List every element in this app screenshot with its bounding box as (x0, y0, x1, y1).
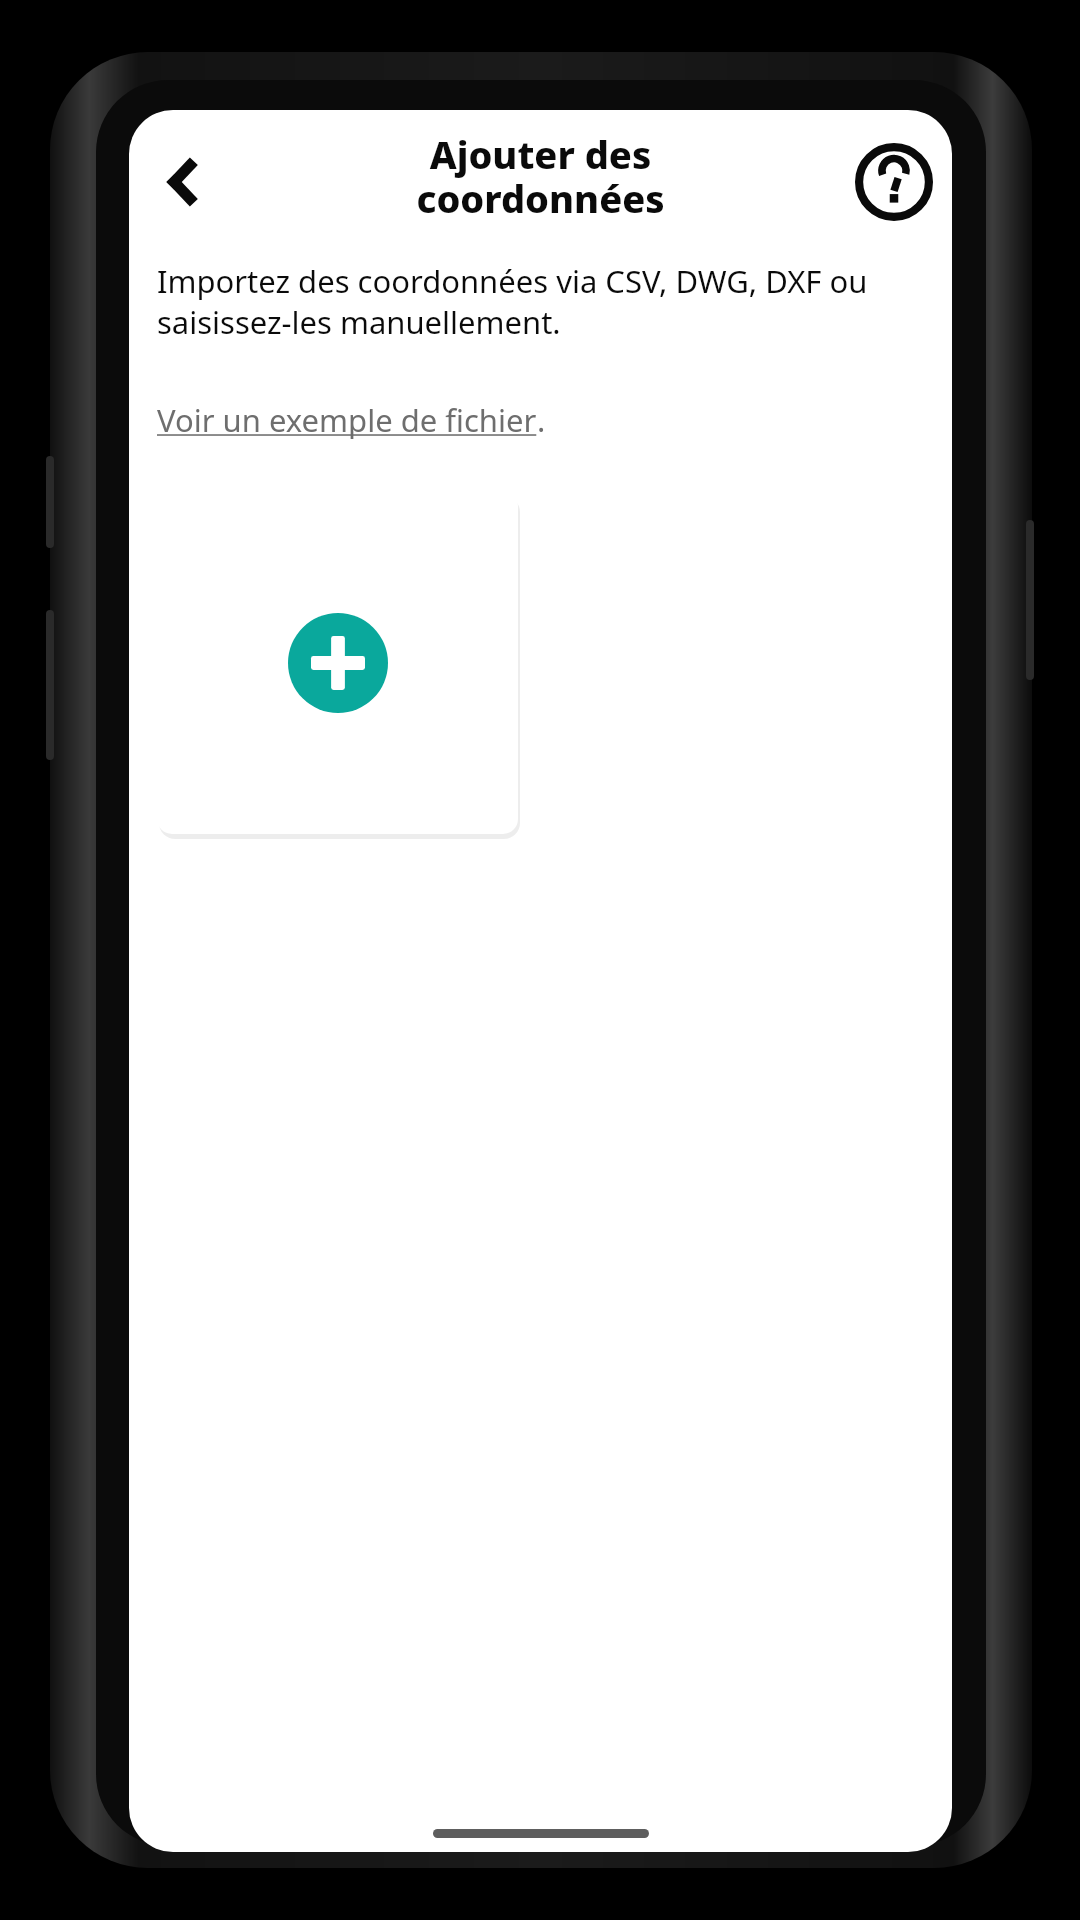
staticText: Importez des coordonnées via CSV, DWG, D… (157, 260, 868, 343)
button[interactable]: Help (850, 138, 938, 226)
button[interactable]: Voir un exemple de fichier (157, 395, 546, 445)
button[interactable]: Add coordinates (157, 491, 518, 834)
staticText: . (537, 399, 546, 441)
button[interactable]: Back (139, 138, 227, 226)
staticText: Ajouter des coordonnées (416, 128, 665, 224)
staticText: Voir un exemple de fichier (157, 399, 537, 441)
